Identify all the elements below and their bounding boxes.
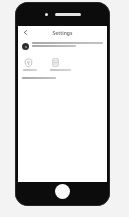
button[interactable]: Back [19,26,32,39]
other: Privacy [23,57,33,67]
button[interactable]: Documents [50,57,75,71]
button[interactable] [22,42,103,49]
staticText: Settings [18,30,107,37]
other: Documents [50,57,60,67]
button[interactable]: Home [55,184,70,199]
button[interactable]: Privacy [23,57,40,71]
